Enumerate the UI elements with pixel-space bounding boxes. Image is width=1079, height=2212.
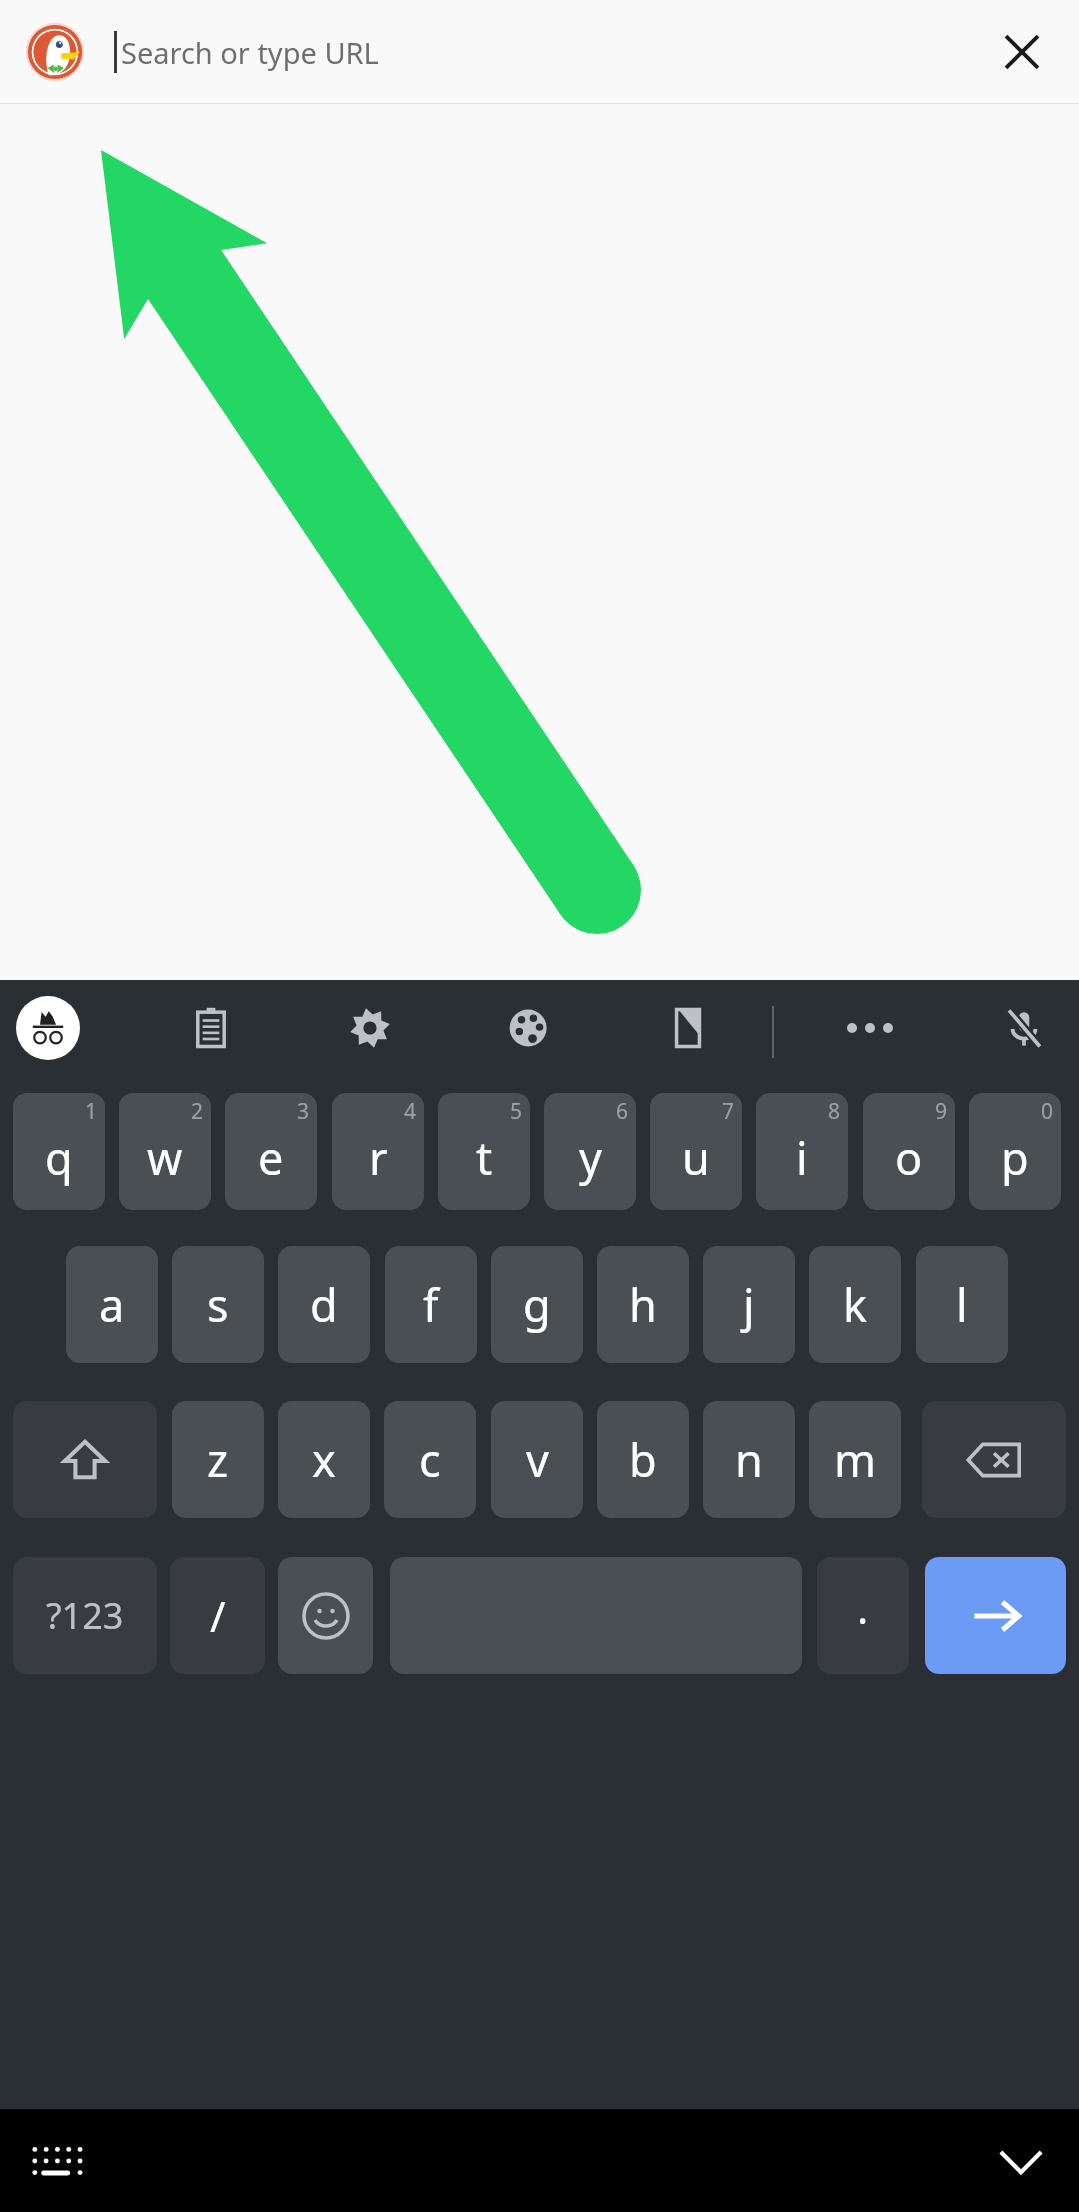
staticText: v bbox=[526, 1429, 549, 1490]
button[interactable]: 7 bbox=[650, 1093, 742, 1210]
button[interactable]: s bbox=[172, 1246, 264, 1363]
staticText: Search or type URL bbox=[121, 33, 379, 72]
staticText: q bbox=[45, 1127, 73, 1188]
button[interactable]: m bbox=[809, 1401, 901, 1518]
button[interactable]: 3 bbox=[225, 1093, 317, 1210]
button[interactable]: l bbox=[916, 1246, 1008, 1363]
button[interactable]: Clear bbox=[989, 19, 1055, 85]
button[interactable]: x bbox=[278, 1401, 370, 1518]
button[interactable]: d bbox=[278, 1246, 370, 1363]
button[interactable]: b bbox=[597, 1401, 689, 1518]
button[interactable]: DuckDuckGo bbox=[24, 21, 86, 83]
button[interactable]: Theme bbox=[491, 990, 567, 1066]
staticText: o bbox=[895, 1127, 923, 1188]
button[interactable]: 2 bbox=[119, 1093, 211, 1210]
button[interactable]: Switch keyboard bbox=[12, 2115, 104, 2207]
button[interactable]: / bbox=[170, 1557, 265, 1674]
staticText: g bbox=[523, 1274, 551, 1335]
button[interactable]: More bbox=[832, 990, 908, 1066]
button[interactable]: 6 bbox=[544, 1093, 636, 1210]
button[interactable]: h bbox=[597, 1246, 689, 1363]
staticText: a bbox=[99, 1274, 125, 1335]
staticText: u bbox=[682, 1127, 710, 1188]
staticText: c bbox=[419, 1429, 441, 1490]
button[interactable]: 9 bbox=[863, 1093, 955, 1210]
button[interactable]: Shift bbox=[13, 1401, 157, 1518]
staticText: 8 bbox=[828, 1097, 841, 1126]
staticText: b bbox=[629, 1429, 657, 1490]
staticText: z bbox=[207, 1429, 229, 1490]
staticText: 7 bbox=[722, 1097, 735, 1126]
staticText: x bbox=[312, 1429, 336, 1490]
staticText: e bbox=[258, 1127, 284, 1188]
staticText: t bbox=[476, 1127, 493, 1188]
button[interactable]: j bbox=[703, 1246, 795, 1363]
button[interactable]: Emoji bbox=[278, 1557, 373, 1674]
staticText: s bbox=[207, 1274, 229, 1335]
staticText: i bbox=[796, 1127, 808, 1188]
button[interactable]: f bbox=[385, 1246, 477, 1363]
staticText: y bbox=[579, 1127, 602, 1188]
button[interactable]: z bbox=[172, 1401, 264, 1518]
button[interactable]: Settings bbox=[332, 990, 408, 1066]
staticText: n bbox=[735, 1429, 763, 1490]
button[interactable]: n bbox=[703, 1401, 795, 1518]
button[interactable]: g bbox=[491, 1246, 583, 1363]
staticText: 5 bbox=[510, 1097, 523, 1126]
button[interactable]: a bbox=[66, 1246, 158, 1363]
button[interactable]: 1 bbox=[13, 1093, 105, 1210]
staticText: ?123 bbox=[46, 1591, 124, 1640]
staticText: 9 bbox=[935, 1097, 948, 1126]
button[interactable]: Voice input muted bbox=[986, 990, 1062, 1066]
button[interactable]: Incognito bbox=[16, 996, 80, 1060]
staticText: 6 bbox=[616, 1097, 629, 1126]
staticText: 3 bbox=[297, 1097, 310, 1126]
button[interactable]: ?123 bbox=[13, 1557, 157, 1674]
button[interactable]: 4 bbox=[332, 1093, 424, 1210]
button[interactable]: 8 bbox=[756, 1093, 848, 1210]
staticText: l bbox=[956, 1274, 968, 1335]
staticText: j bbox=[743, 1274, 755, 1335]
staticText: . bbox=[857, 1579, 869, 1636]
staticText: k bbox=[843, 1274, 868, 1335]
staticText: m bbox=[834, 1429, 877, 1490]
button[interactable]: Clipboard bbox=[173, 990, 249, 1066]
button[interactable]: v bbox=[491, 1401, 583, 1518]
button[interactable]: 0 bbox=[969, 1093, 1061, 1210]
staticText: 2 bbox=[191, 1097, 204, 1126]
button[interactable]: k bbox=[809, 1246, 901, 1363]
staticText: 4 bbox=[404, 1097, 417, 1126]
button[interactable]: Go bbox=[925, 1557, 1066, 1674]
staticText: w bbox=[147, 1127, 183, 1188]
staticText: p bbox=[1001, 1127, 1029, 1188]
button[interactable]: 5 bbox=[438, 1093, 530, 1210]
button[interactable]: Hide keyboard bbox=[975, 2115, 1067, 2207]
button[interactable]: Floating keyboard bbox=[650, 990, 726, 1066]
button[interactable]: Backspace bbox=[922, 1401, 1066, 1518]
button[interactable]: . bbox=[817, 1557, 909, 1674]
button[interactable]: c bbox=[384, 1401, 476, 1518]
staticText: r bbox=[369, 1127, 388, 1188]
staticText: / bbox=[210, 1587, 226, 1644]
staticText: d bbox=[310, 1274, 338, 1335]
staticText: h bbox=[629, 1274, 657, 1335]
staticText: f bbox=[423, 1274, 439, 1335]
staticText: 0 bbox=[1041, 1097, 1054, 1126]
staticText: 1 bbox=[85, 1097, 98, 1126]
